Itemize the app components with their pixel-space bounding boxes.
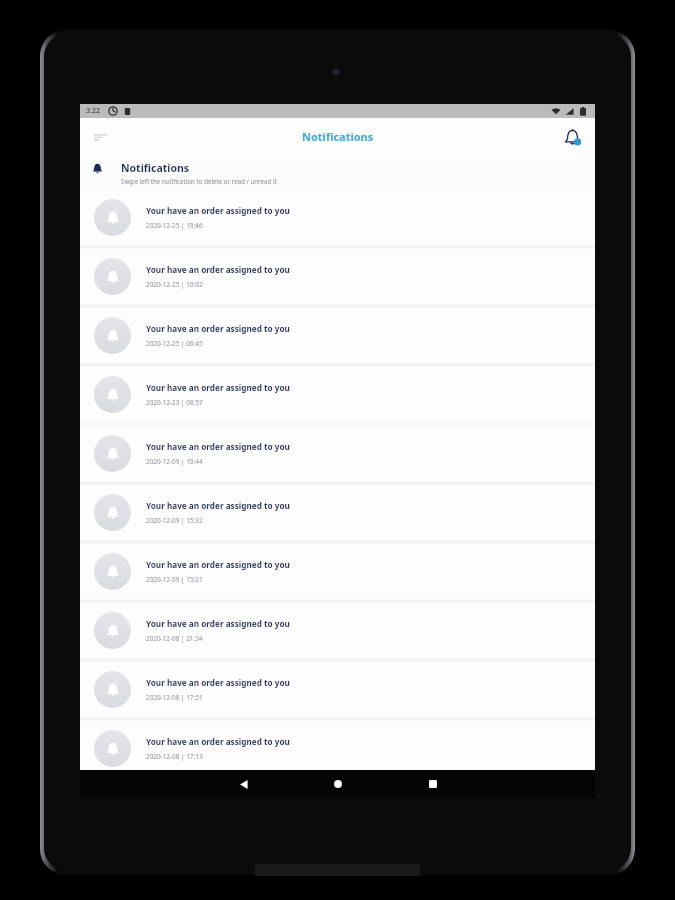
staticText: 2020-12-23 | 08:57 [146,398,203,407]
staticText: Your have an order assigned to you [146,559,290,570]
staticText: Swipe left the notification to delete or… [121,177,277,185]
staticText: 2020-12-25 | 19:46 [146,221,203,230]
staticText: Your have an order assigned to you [146,677,290,688]
button[interactable]: Your have an order assigned to you [80,485,595,540]
button[interactable]: Notifications [557,122,587,152]
staticText: 2020-12-08 | 17:51 [146,693,203,702]
button[interactable]: Your have an order assigned to you [80,426,595,481]
staticText: Your have an order assigned to you [146,736,290,747]
button[interactable]: Your have an order assigned to you [80,249,595,304]
staticText: 2020-12-09 | 15:21 [146,575,203,584]
staticText: Your have an order assigned to you [146,500,290,511]
staticText: 2020-12-25 | 10:02 [146,280,203,289]
staticText: Your have an order assigned to you [146,618,290,629]
staticText: Notifications [121,161,190,175]
staticText: 2020-12-09 | 15:32 [146,516,203,525]
button[interactable]: Your have an order assigned to you [80,721,595,776]
button[interactable]: Recents [419,770,447,798]
staticText: 2020-12-09 | 19:44 [146,457,203,466]
staticText: 2020-12-25 | 06:45 [146,339,203,348]
staticText: 2020-12-08 | 21:34 [146,634,203,643]
button[interactable]: Sort [85,122,115,152]
staticText: Your have an order assigned to you [146,441,290,452]
button[interactable]: Back [230,770,258,798]
button[interactable]: Your have an order assigned to you [80,603,595,658]
button[interactable]: Your have an order assigned to you [80,544,595,599]
staticText: Your have an order assigned to you [146,382,290,393]
button[interactable]: Your have an order assigned to you [80,367,595,422]
button[interactable]: Home [324,770,352,798]
button[interactable]: Your have an order assigned to you [80,662,595,717]
staticText: 2020-12-08 | 17:13 [146,752,203,761]
staticText: Your have an order assigned to you [146,323,290,334]
staticText: Your have an order assigned to you [146,205,290,216]
button[interactable]: Your have an order assigned to you [80,308,595,363]
staticText: Notifications [302,129,374,144]
staticText: 3:22 [86,106,100,116]
button[interactable]: Your have an order assigned to you [80,190,595,245]
staticText: Your have an order assigned to you [146,264,290,275]
